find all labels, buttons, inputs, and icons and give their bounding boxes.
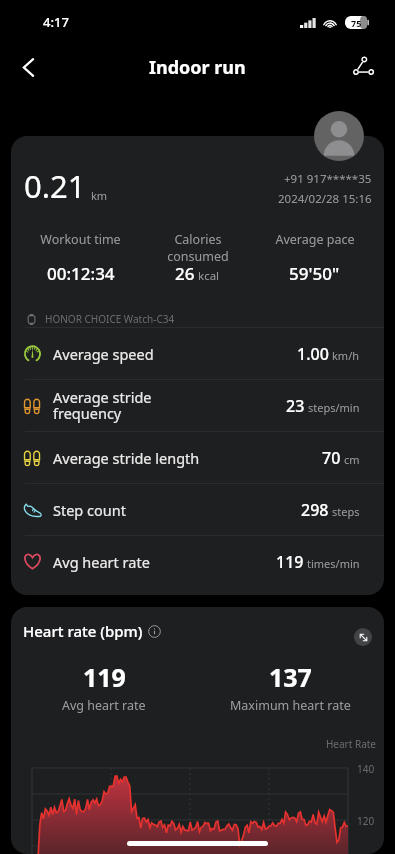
staticText: Avg heart rate: [62, 697, 146, 714]
button[interactable]: Average stride length: [11, 432, 384, 483]
staticText: Average stride length: [53, 448, 322, 468]
button[interactable]: Step count: [11, 484, 384, 535]
button[interactable]: Average speed: [11, 328, 384, 379]
staticText: 119: [276, 551, 304, 573]
staticText: 23: [286, 395, 305, 417]
staticText: Step count: [53, 500, 301, 520]
staticText: 70: [322, 447, 341, 469]
staticText: +91 917*****35: [284, 171, 372, 187]
staticText: 59'50": [289, 262, 340, 285]
staticText: Average pace: [275, 231, 355, 248]
staticText: km: [91, 188, 108, 203]
staticText: Maximum heart rate: [230, 697, 351, 714]
staticText: steps/min: [308, 400, 360, 415]
staticText: 140: [357, 762, 375, 776]
button[interactable]: Share: [341, 45, 385, 89]
staticText: Heart Rate: [11, 737, 376, 751]
staticText: Calories consumed: [167, 231, 229, 262]
button[interactable]: Average stride frequency: [11, 380, 384, 431]
staticText: Heart rate (bpm): [23, 621, 143, 641]
staticText: Workout time: [40, 231, 121, 248]
staticText: 26: [175, 262, 195, 285]
staticText: 298: [301, 499, 329, 521]
staticText: Avg heart rate: [53, 552, 276, 572]
staticText: times/min: [307, 556, 360, 571]
staticText: steps: [332, 504, 360, 519]
staticText: 00:12:34: [47, 262, 115, 285]
button[interactable]: Back: [6, 45, 50, 89]
staticText: 75: [351, 17, 362, 29]
staticText: Average speed: [53, 344, 297, 364]
staticText: HONOR CHOICE Watch-C34: [45, 312, 175, 326]
button[interactable]: Avg heart rate: [11, 536, 384, 587]
staticText: 137: [269, 660, 312, 694]
staticText: Indoor run: [149, 55, 246, 80]
staticText: 1.00: [297, 343, 329, 365]
staticText: 120: [357, 814, 375, 828]
staticText: cm: [344, 452, 360, 467]
staticText: km/h: [332, 348, 360, 363]
staticText: 0.21: [24, 165, 86, 207]
button[interactable]: Profile: [314, 111, 364, 161]
staticText: Average stride frequency: [53, 387, 286, 424]
staticText: 119: [83, 660, 126, 694]
staticText: kcal: [198, 268, 220, 284]
staticText: 2024/02/28 15:16: [278, 191, 372, 207]
staticText: 4:17: [43, 13, 69, 31]
button[interactable]: Expand chart: [354, 628, 372, 646]
